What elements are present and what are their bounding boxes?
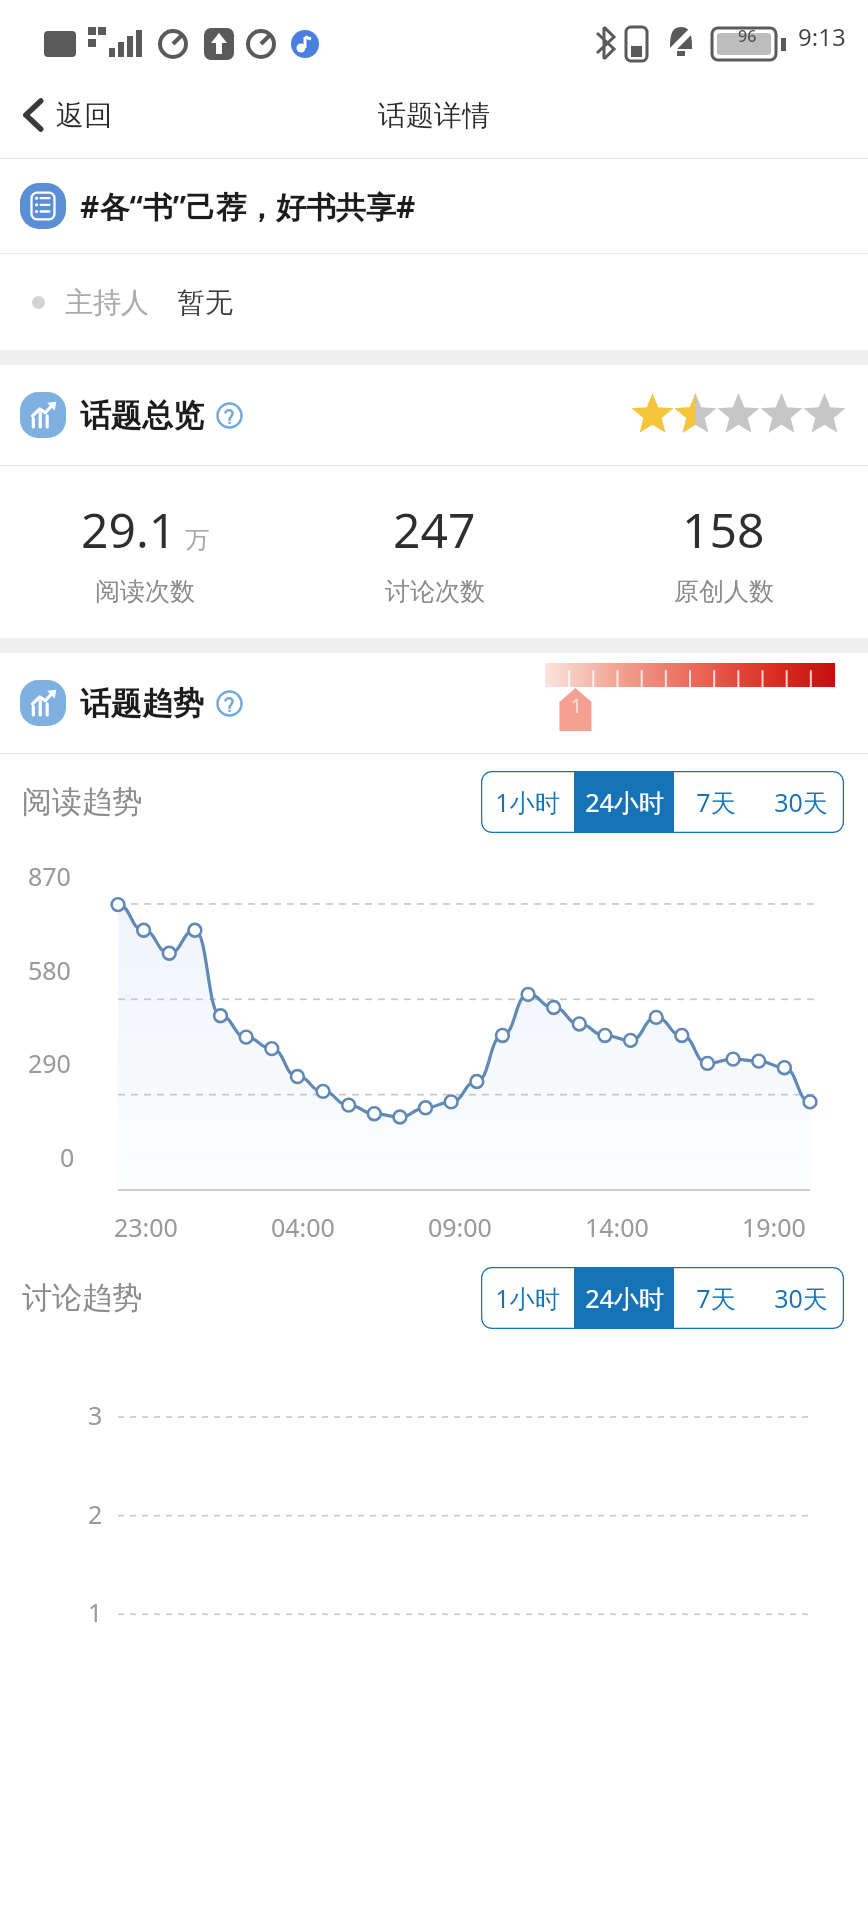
other: 帮助 [216,402,243,429]
staticText: 96 [738,25,757,47]
button[interactable]: 158 [579,466,868,638]
button[interactable]: 返回 [0,72,134,158]
button[interactable]: 1小时 [481,771,574,833]
staticText: 7天 [696,1281,736,1315]
staticText: 23:00 [114,1210,178,1244]
staticText: 30天 [774,1281,828,1315]
staticText: 1小时 [495,1281,560,1315]
button[interactable]: 24小时 [574,1267,674,1329]
button[interactable]: 7天 [674,771,757,833]
staticText: 讨论趋势 [22,1279,142,1317]
staticText: 话题趋势 [80,684,204,723]
staticText: 870 [28,859,71,893]
button[interactable]: #各“书”己荐，好书共享# [0,159,868,253]
staticText: 9:13 [798,20,846,53]
staticText: 247 [393,497,476,562]
staticText: #各“书”己荐，好书共享# [80,186,416,227]
button[interactable]: 1小时 [481,1267,574,1329]
button[interactable]: 30天 [757,771,844,833]
staticText: 话题详情 [378,98,490,133]
staticText: 原创人数 [674,576,774,607]
button[interactable]: 24小时 [574,771,674,833]
staticText: 24小时 [585,785,664,819]
button[interactable]: 29.1 [0,466,290,638]
staticText: 返回 [56,98,112,133]
staticText: 1小时 [495,785,560,819]
staticText: 04:00 [271,1210,335,1244]
staticText: 暂无 [177,285,233,320]
other: 帮助 [216,690,243,717]
button[interactable]: 话题总览 [0,365,868,465]
staticText: 14:00 [585,1210,649,1244]
staticText: 1 [88,1595,103,1629]
staticText: 290 [28,1046,71,1080]
staticText: 主持人 [65,285,149,320]
staticText: 19:00 [742,1210,806,1244]
staticText: 29.1 [81,497,177,562]
staticText: 09:00 [428,1210,492,1244]
staticText: 0 [60,1140,75,1174]
staticText: 话题总览 [80,396,204,435]
staticText: 阅读次数 [95,576,195,607]
staticText: 讨论次数 [385,576,485,607]
button[interactable]: 30天 [757,1267,844,1329]
button[interactable]: 话题趋势 [0,653,259,753]
staticText: 30天 [774,785,828,819]
staticText: 3 [88,1398,103,1432]
staticText: 2 [88,1497,103,1531]
staticText: 580 [28,953,71,987]
button[interactable]: 主持人 [0,254,868,350]
staticText: 阅读趋势 [22,783,142,821]
staticText: 1 [571,693,582,719]
button[interactable]: 247 [290,466,579,638]
button[interactable]: 7天 [674,1267,757,1329]
staticText: 24小时 [585,1281,664,1315]
staticText: 万 [185,525,209,555]
staticText: 7天 [696,785,736,819]
staticText: 158 [682,497,765,562]
